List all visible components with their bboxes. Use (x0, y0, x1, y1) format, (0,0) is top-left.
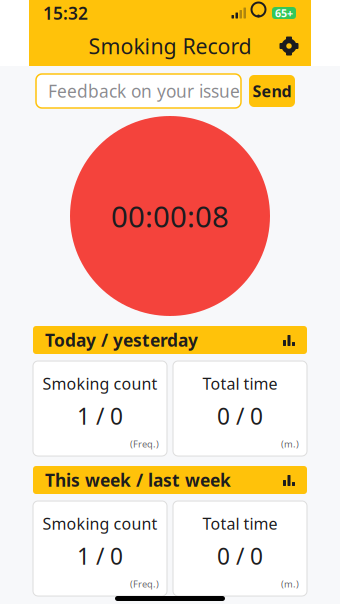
button[interactable]: Smoking count (33, 361, 167, 456)
staticText: 1 / 0 (77, 401, 123, 431)
staticText: Total time (202, 373, 277, 394)
staticText: (Freq.) (130, 578, 159, 590)
staticText: 1 / 0 (77, 541, 123, 571)
staticText: 65+ (275, 6, 293, 20)
staticText: Smoking Record (88, 32, 251, 60)
staticText: 15:32 (43, 1, 88, 24)
staticText: 0 / 0 (217, 401, 263, 431)
button[interactable]: Smoking count (33, 501, 167, 596)
staticText: Total time (202, 513, 277, 534)
staticText: Smoking count (42, 513, 157, 534)
staticText: 0 / 0 (217, 541, 263, 571)
button[interactable]: Total time (173, 361, 307, 456)
staticText: (m.) (281, 578, 299, 590)
button[interactable]: Today / yesterday (33, 326, 307, 354)
staticText: 00:00:08 (111, 196, 229, 235)
staticText: (m.) (281, 438, 299, 450)
staticText: Today / yesterday (45, 328, 198, 351)
staticText: This week / last week (45, 468, 231, 491)
button[interactable]: Settings (273, 30, 305, 62)
button[interactable]: Total time (173, 501, 307, 596)
button[interactable]: Send (249, 75, 295, 107)
button[interactable]: This week / last week (33, 466, 307, 494)
staticText: Smoking count (42, 373, 157, 394)
staticText: (Freq.) (130, 438, 159, 450)
staticText: Send (252, 80, 291, 102)
staticText: Feedback on your issue (48, 79, 240, 102)
